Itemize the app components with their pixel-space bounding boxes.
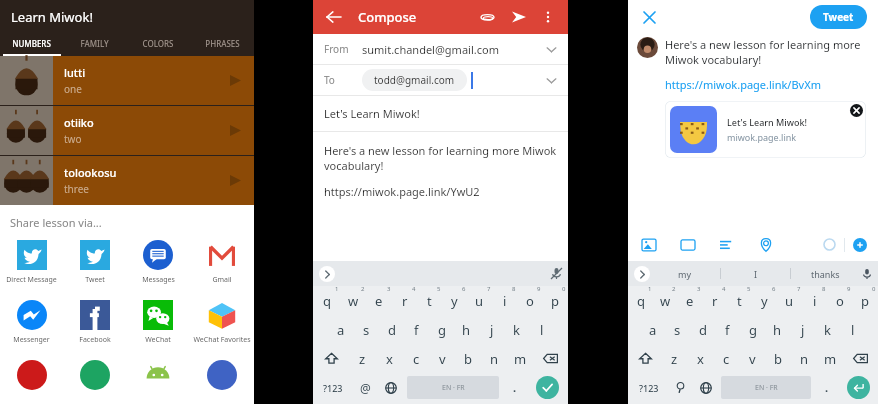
button[interactable]: r <box>392 286 417 315</box>
button[interactable]: p <box>542 286 567 315</box>
button[interactable]: EN · FR <box>407 376 499 399</box>
button[interactable]: j <box>479 315 504 344</box>
button[interactable]: WeChat <box>126 298 190 347</box>
button[interactable]: d <box>690 315 715 344</box>
button[interactable]: o <box>827 286 852 315</box>
button[interactable]: w <box>340 286 366 315</box>
button[interactable]: w <box>653 286 677 315</box>
button[interactable]: Let's Learn Miwok! <box>665 101 866 158</box>
button[interactable]: q <box>629 286 653 315</box>
button[interactable]: s <box>354 315 379 344</box>
button[interactable]: Add tweet <box>853 238 867 252</box>
button[interactable]: b <box>455 344 481 373</box>
button[interactable]: Poll <box>717 235 736 254</box>
button[interactable]: lutti <box>0 56 254 105</box>
button[interactable]: I <box>721 261 790 286</box>
button[interactable]: Expand toolbar <box>634 266 650 282</box>
button[interactable]: EN · FR <box>721 376 811 399</box>
button[interactable]: PHRASES <box>190 30 254 56</box>
button[interactable]: d <box>379 315 404 344</box>
button[interactable]: Add photo <box>639 235 658 254</box>
button[interactable]: Change language <box>693 373 718 402</box>
button[interactable]: u <box>777 286 802 315</box>
button[interactable]: m <box>817 344 843 373</box>
button[interactable]: j <box>790 315 815 344</box>
button[interactable] <box>63 358 126 392</box>
button[interactable]: ?123 <box>629 373 668 402</box>
button[interactable]: q <box>314 286 340 315</box>
button[interactable]: l <box>529 315 554 344</box>
button[interactable]: o <box>517 286 542 315</box>
button[interactable]: a <box>328 315 354 344</box>
button[interactable]: e <box>366 286 392 315</box>
button[interactable]: c <box>403 344 429 373</box>
button[interactable]: u <box>467 286 492 315</box>
button[interactable]: Facebook <box>63 298 126 347</box>
button[interactable]: i <box>492 286 517 315</box>
button[interactable]: . <box>814 373 839 402</box>
button[interactable] <box>126 358 190 392</box>
button[interactable]: k <box>815 315 840 344</box>
button[interactable]: Backspace <box>533 344 567 373</box>
button[interactable]: k <box>504 315 529 344</box>
button[interactable]: y <box>442 286 467 315</box>
button[interactable]: v <box>739 344 765 373</box>
button[interactable]: At sign <box>352 373 378 402</box>
button[interactable] <box>190 358 254 392</box>
button[interactable]: Shift <box>629 344 662 373</box>
button[interactable]: my <box>650 261 720 286</box>
button[interactable]: t <box>727 286 752 315</box>
button[interactable]: h <box>765 315 790 344</box>
button[interactable]: Add GIF <box>678 235 697 254</box>
button[interactable]: Remove preview <box>850 104 863 117</box>
button[interactable]: Tweet <box>810 5 867 29</box>
button[interactable]: n <box>791 344 817 373</box>
button[interactable]: tolookosu <box>0 156 254 205</box>
button[interactable]: f <box>715 315 740 344</box>
button[interactable]: m <box>507 344 533 373</box>
button[interactable]: Back <box>324 7 344 27</box>
button[interactable]: thanks <box>791 261 860 286</box>
button[interactable]: ?123 <box>314 373 352 402</box>
button[interactable]: NUMBERS <box>0 30 63 56</box>
button[interactable]: Done <box>536 376 559 399</box>
button[interactable]: f <box>404 315 429 344</box>
button[interactable]: Backspace <box>843 344 877 373</box>
button[interactable]: p <box>852 286 877 315</box>
button[interactable]: v <box>429 344 455 373</box>
button[interactable]: Messenger <box>0 298 63 347</box>
button[interactable] <box>0 358 63 392</box>
button[interactable]: r <box>702 286 727 315</box>
button[interactable]: Send <box>509 7 529 27</box>
button[interactable]: n <box>481 344 507 373</box>
button[interactable]: x <box>687 344 713 373</box>
button[interactable]: b <box>765 344 791 373</box>
button[interactable]: Expand toolbar <box>319 266 335 282</box>
button[interactable]: Attach <box>477 7 497 27</box>
button[interactable]: otiiko <box>0 106 254 155</box>
button[interactable]: Change language <box>378 373 404 402</box>
button[interactable]: Enter <box>847 376 870 399</box>
button[interactable]: i <box>802 286 827 315</box>
button[interactable]: https://miwok.page.link/BvXm <box>665 77 821 92</box>
button[interactable]: WeChat Favorites <box>190 298 254 347</box>
button[interactable]: Close <box>639 7 659 27</box>
button[interactable]: l <box>840 315 865 344</box>
button[interactable]: More options <box>539 8 557 26</box>
button[interactable]: COLORS <box>126 30 190 56</box>
button[interactable]: s <box>665 315 690 344</box>
button[interactable]: a <box>640 315 665 344</box>
button[interactable]: Location <box>756 235 775 254</box>
button[interactable]: FAMILY <box>63 30 126 56</box>
button[interactable]: z <box>662 344 687 373</box>
button[interactable]: g <box>740 315 765 344</box>
button[interactable]: x <box>376 344 403 373</box>
button[interactable]: Shift <box>314 344 349 373</box>
button[interactable]: y <box>752 286 777 315</box>
button[interactable]: Gmail <box>190 238 254 287</box>
button[interactable]: e <box>677 286 702 315</box>
button[interactable]: z <box>349 344 376 373</box>
button[interactable]: Emoji <box>668 373 693 402</box>
button[interactable]: Messages <box>126 238 190 287</box>
button[interactable]: Direct Message <box>0 238 63 287</box>
